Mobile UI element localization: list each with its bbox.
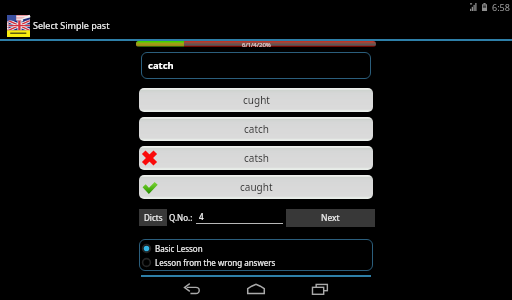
staticText: 4 <box>199 211 204 222</box>
button[interactable]: catch <box>139 117 373 141</box>
staticText: Q.No.: <box>169 212 193 223</box>
button[interactable]: cught <box>139 88 373 112</box>
staticText: Select Simple past <box>33 19 110 31</box>
staticText: catsh <box>244 151 269 165</box>
button[interactable]: Back <box>176 280 208 297</box>
button[interactable]: Basic Lesson <box>142 242 203 254</box>
button[interactable]: Lesson from the wrong answers <box>142 256 276 268</box>
button[interactable]: Home <box>240 280 272 297</box>
staticText: cught <box>243 93 270 107</box>
staticText: 6:58 <box>492 1 510 13</box>
button[interactable]: Next <box>286 209 375 227</box>
staticText: caught <box>240 180 273 194</box>
staticText: Basic Lesson <box>155 243 203 254</box>
button[interactable]: Recent apps <box>304 280 336 297</box>
button[interactable]: caught <box>139 175 373 199</box>
button[interactable]: Select Simple past <box>0 13 512 39</box>
button[interactable]: catsh <box>139 146 373 170</box>
button[interactable]: 4 <box>196 209 283 226</box>
staticText: catch <box>244 122 269 136</box>
button[interactable]: catch <box>141 52 371 79</box>
staticText: Dicts <box>144 212 163 223</box>
staticText: Lesson from the wrong answers <box>155 257 276 268</box>
button[interactable]: Dicts <box>139 209 167 226</box>
staticText: 6/1/4/20% <box>242 41 271 47</box>
staticText: catch <box>148 59 174 72</box>
staticText: Next <box>321 212 340 224</box>
